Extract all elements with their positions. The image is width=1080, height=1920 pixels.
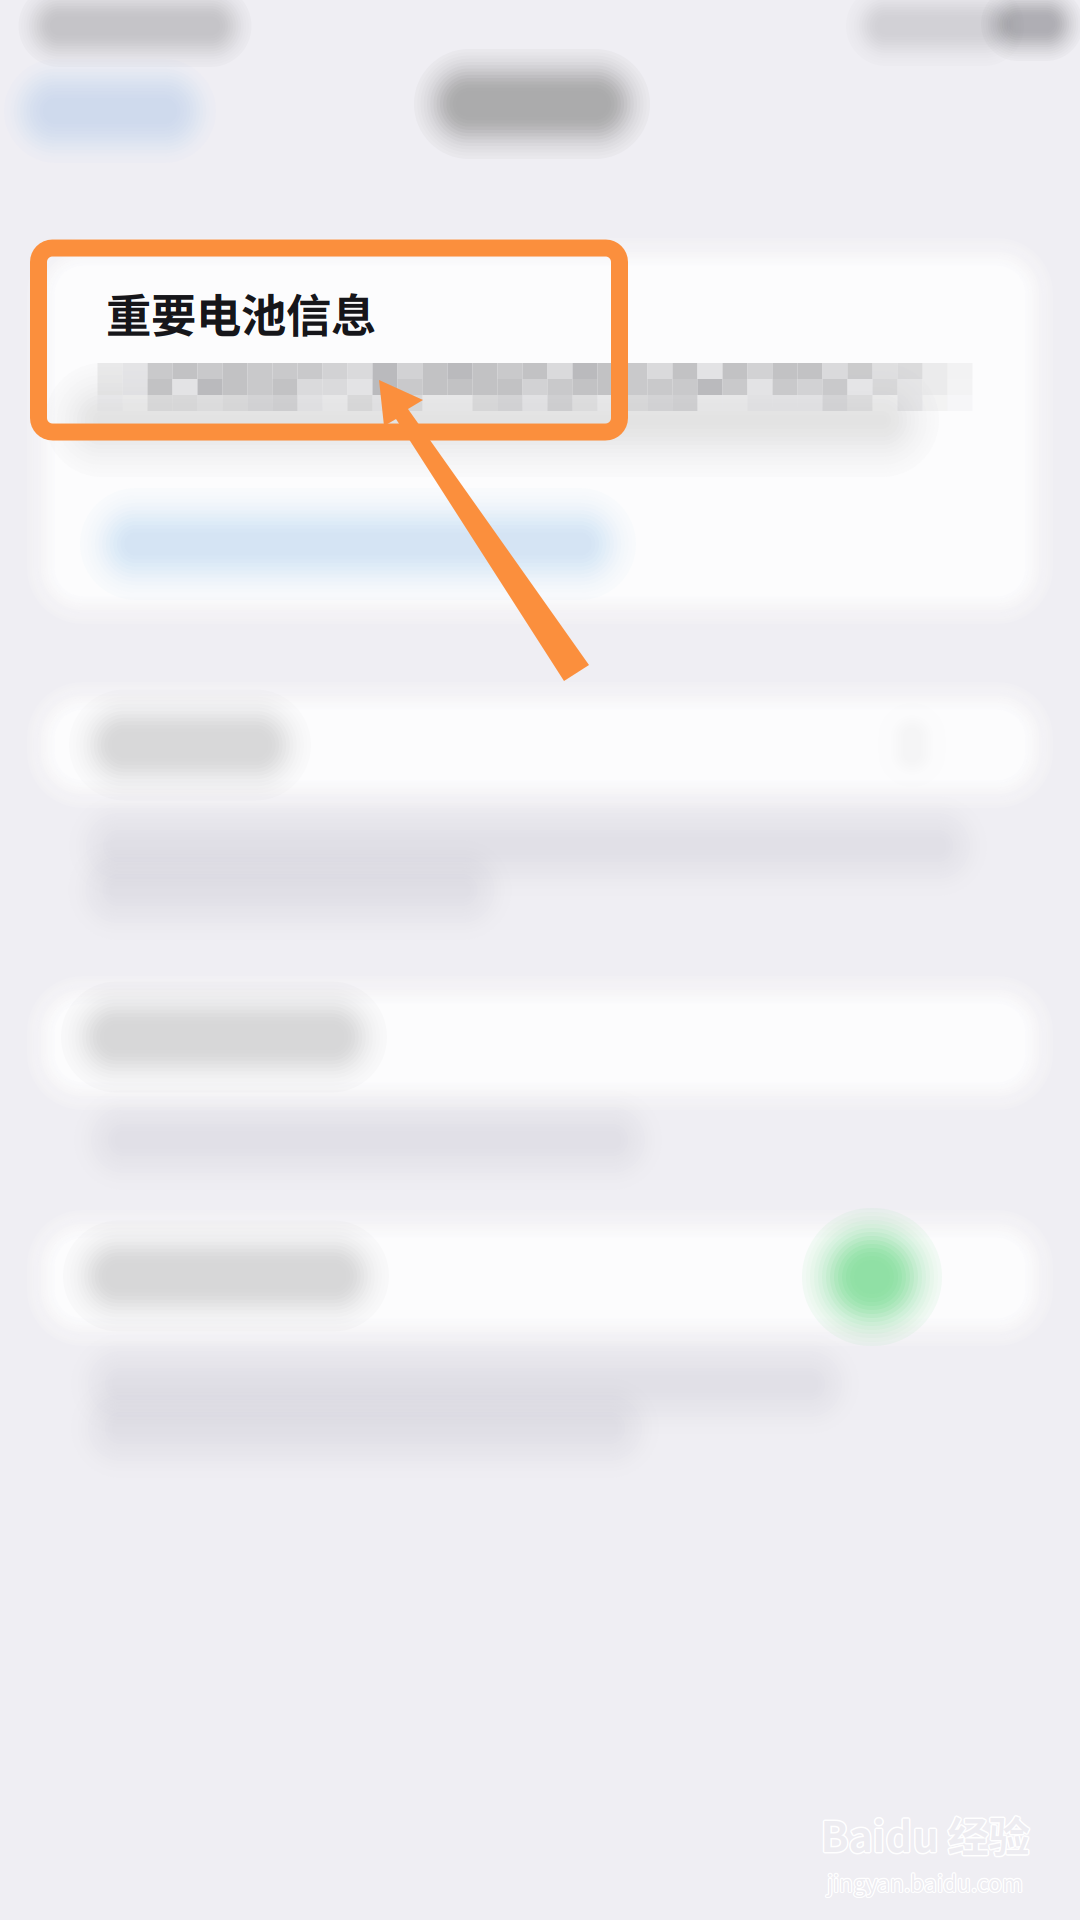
staticText: jingyan.baidu.com [828,1866,1024,1899]
staticText: Baidu 经验 [822,1804,1031,1864]
button[interactable]: Back [0,0,1080,1920]
staticText: Baidu 经验 [820,1805,1029,1865]
button[interactable]: Optimised battery charging [0,0,1080,1920]
staticText: jingyan.baidu.com [827,1864,1023,1897]
staticText: 重要电池信息 [106,280,376,346]
staticText: jingyan.baidu.com [826,1865,1022,1898]
button[interactable] [0,0,1080,1920]
staticText: Baidu 经验 [820,1804,1029,1864]
staticText: Baidu 经验 [821,1805,1030,1865]
staticText: jingyan.baidu.com [827,1867,1023,1899]
staticText: Baidu 经验 [820,1803,1029,1862]
staticText: jingyan.baidu.com [827,1866,1023,1898]
staticText: Baidu 经验 [821,1803,1030,1863]
staticText: jingyan.baidu.com [826,1866,1022,1898]
staticText: Baidu 经验 [819,1804,1028,1864]
button[interactable] [0,0,1080,1920]
staticText: jingyan.baidu.com [828,1865,1024,1898]
staticText: jingyan.baidu.com [826,1866,1022,1899]
staticText: jingyan.baidu.com [828,1866,1024,1898]
staticText: Baidu 经验 [819,1803,1028,1863]
button[interactable] [0,0,1080,1920]
staticText: Baidu 经验 [819,1805,1028,1865]
